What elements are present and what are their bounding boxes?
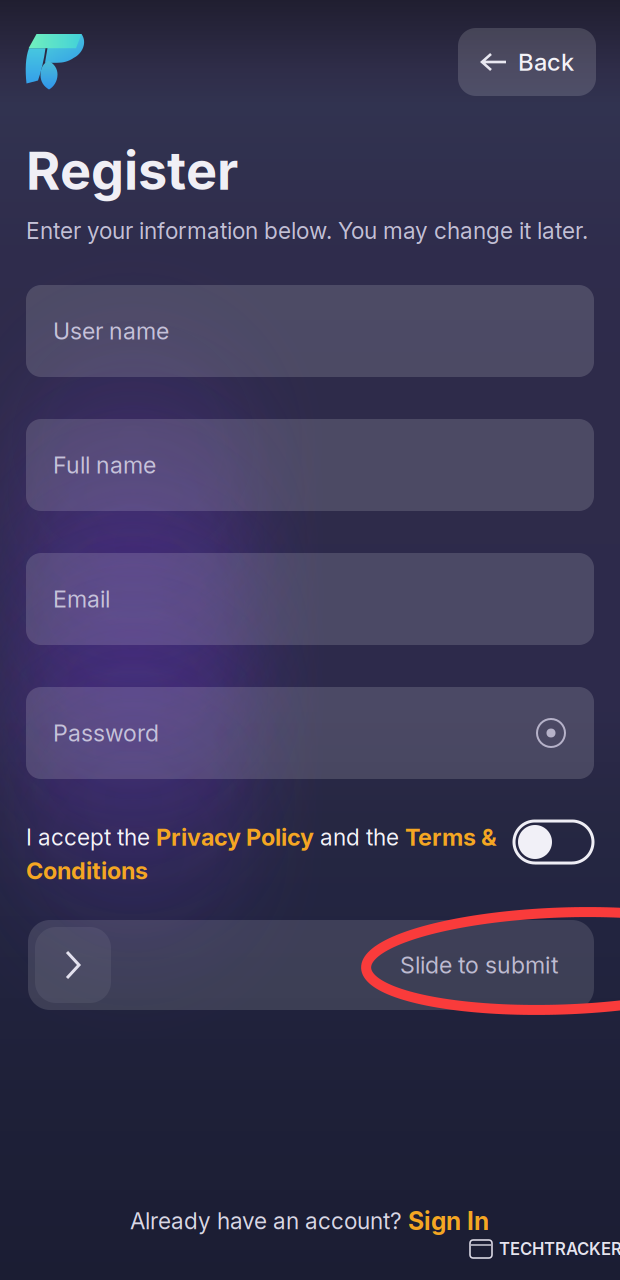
button[interactable]: Conditions (26, 856, 148, 885)
button[interactable]: Slide to submit (28, 920, 594, 1010)
staticText: I accept the (26, 823, 156, 851)
staticText: Conditions (26, 856, 148, 885)
staticText: Full name (53, 451, 156, 479)
staticText: TECHTRACKER.IN (499, 1239, 620, 1259)
staticText: Slide to submit (400, 951, 559, 979)
staticText: Register (26, 139, 238, 202)
button[interactable]: Accept terms (514, 821, 593, 863)
staticText: Terms & (405, 823, 497, 851)
staticText: Password (53, 719, 159, 747)
staticText: Already have an account? (130, 1207, 408, 1235)
staticText: and the (314, 823, 405, 851)
button[interactable]: Privacy Policy (156, 823, 314, 851)
staticText: Privacy Policy (156, 823, 314, 851)
staticText: Back (518, 48, 574, 76)
staticText: Email (53, 585, 110, 613)
staticText: Sign In (408, 1206, 489, 1236)
button[interactable]: Sign In (408, 1206, 489, 1236)
staticText: Enter your information below. You may ch… (26, 217, 588, 244)
staticText: User name (53, 317, 169, 345)
button[interactable]: Back (458, 28, 596, 96)
